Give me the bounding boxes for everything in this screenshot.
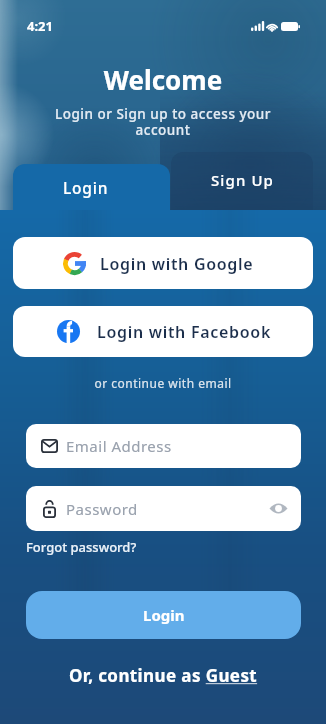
- button[interactable]: Forgot password?: [26, 538, 137, 556]
- button[interactable]: Login: [13, 164, 170, 210]
- staticText: Sign Up: [211, 170, 274, 190]
- button[interactable]: Login with Facebook: [13, 306, 313, 357]
- button[interactable]: Or, continue as Guest: [0, 664, 326, 687]
- staticText: 4:21: [27, 17, 53, 35]
- button[interactable]: Sign Up: [171, 152, 313, 210]
- staticText: Login: [63, 177, 109, 198]
- button[interactable]: Email Address: [26, 424, 301, 468]
- button[interactable]: Login: [26, 591, 301, 639]
- staticText: Welcome: [0, 62, 326, 97]
- staticText: Login or Sign up to access your account: [0, 105, 326, 139]
- staticText: Login: [143, 605, 185, 625]
- button[interactable]: Password: [26, 486, 301, 531]
- staticText: or continue with email: [0, 375, 326, 391]
- staticText: Login with Facebook: [97, 321, 272, 343]
- staticText: Or, continue as Guest: [69, 664, 258, 687]
- button[interactable]: Login with Google: [13, 237, 313, 289]
- staticText: Password: [66, 499, 138, 519]
- staticText: Login with Google: [100, 253, 254, 275]
- staticText: Email Address: [66, 436, 172, 456]
